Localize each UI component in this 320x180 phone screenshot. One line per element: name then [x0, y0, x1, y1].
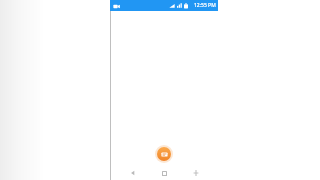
staticText: 12:55 PM: [194, 2, 216, 9]
button[interactable]: Back: [124, 166, 142, 180]
button[interactable]: Home: [155, 166, 173, 180]
other: Notification: [112, 2, 120, 10]
button[interactable]: New message: [154, 144, 174, 164]
button[interactable]: Recent apps: [187, 166, 205, 180]
